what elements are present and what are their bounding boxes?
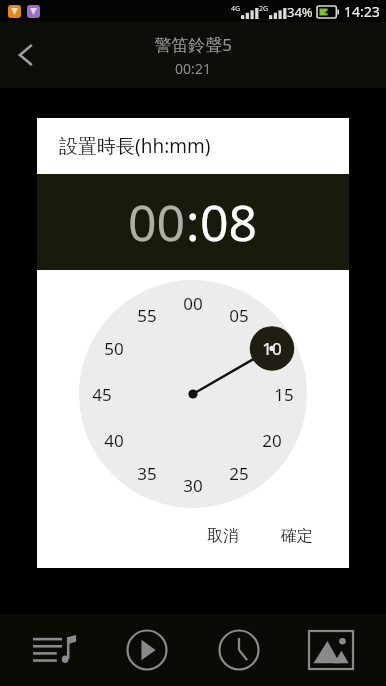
button[interactable]: Gallery [294, 618, 368, 682]
staticText: 警笛鈴聲5 [154, 33, 232, 56]
staticText: 00 [183, 292, 203, 315]
staticText: 15 [274, 383, 294, 406]
staticText: 45 [92, 383, 112, 406]
button[interactable]: Timer [202, 618, 276, 682]
staticText: 00 [128, 188, 186, 256]
button[interactable]: Back [0, 29, 52, 81]
staticText: 40 [104, 429, 124, 452]
staticText: 25 [229, 462, 249, 485]
staticText: 2G [259, 4, 269, 14]
staticText: 確定 [281, 526, 313, 546]
staticText: 設置時長(hh:mm) [59, 133, 211, 159]
staticText: 4G [231, 4, 241, 14]
staticText: 取消 [207, 526, 239, 546]
staticText: 00:21 [175, 59, 211, 78]
staticText: 05 [229, 304, 249, 327]
button[interactable]: Playlist [18, 618, 92, 682]
staticText: 10 [262, 337, 282, 360]
staticText: 08 [200, 188, 258, 256]
button[interactable]: Play [110, 618, 184, 682]
staticText: 20 [262, 429, 282, 452]
staticText: : [186, 188, 200, 256]
staticText: 34% [287, 3, 313, 21]
staticText: 50 [104, 337, 124, 360]
staticText: 14:23 [344, 2, 380, 21]
staticText: 35 [137, 462, 157, 485]
staticText: 55 [137, 304, 157, 327]
button[interactable]: 確定 [267, 518, 327, 554]
staticText: 30 [183, 474, 203, 497]
button[interactable]: 取消 [193, 518, 253, 554]
